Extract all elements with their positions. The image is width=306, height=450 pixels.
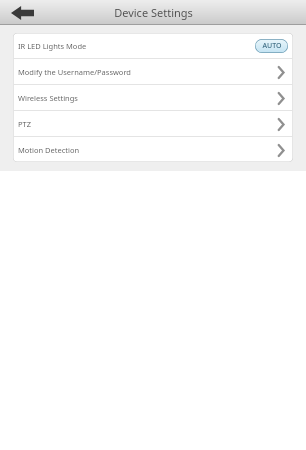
button[interactable]: PTZ <box>13 111 293 136</box>
staticText: Modify the Username/Password <box>18 67 131 77</box>
button[interactable]: Back <box>6 1 38 25</box>
staticText: Device Settings <box>114 5 193 20</box>
staticText: Motion Detection <box>18 145 80 155</box>
button[interactable]: IR LED Lights Mode <box>13 33 293 58</box>
other: Open <box>274 88 288 108</box>
button[interactable]: AUTO <box>255 39 288 53</box>
staticText: PTZ <box>18 119 31 129</box>
button[interactable]: Modify the Username/Password <box>13 59 293 84</box>
staticText: IR LED Lights Mode <box>18 41 87 51</box>
staticText: AUTO <box>262 41 282 51</box>
button[interactable]: Wireless Settings <box>13 85 293 110</box>
other: Open <box>274 140 288 160</box>
other: Open <box>274 62 288 82</box>
button[interactable]: Motion Detection <box>13 137 293 162</box>
staticText: Wireless Settings <box>18 93 78 103</box>
other: Open <box>274 114 288 134</box>
